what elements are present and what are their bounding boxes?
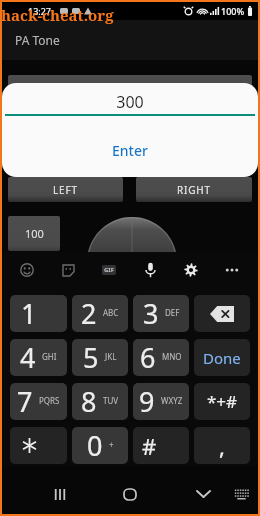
button[interactable]: 2 <box>72 295 128 332</box>
button[interactable]: , <box>194 427 250 464</box>
button[interactable]: Emoji <box>15 258 39 282</box>
staticText: 13:27 <box>28 5 52 17</box>
button[interactable]: 4 <box>10 339 67 376</box>
button[interactable]: 9 <box>133 383 189 420</box>
staticText: TONE <box>115 149 145 163</box>
staticText: 9 <box>139 383 155 420</box>
button[interactable]: Hide keyboard <box>181 472 225 516</box>
button[interactable]: Recents <box>37 472 81 516</box>
staticText: 5 <box>83 339 99 376</box>
staticText: PQRS <box>39 395 60 406</box>
staticText: Done <box>203 348 241 368</box>
button[interactable]: Voice input <box>138 258 162 282</box>
button[interactable]: 100 <box>8 216 60 251</box>
staticText: 100% <box>221 5 245 17</box>
button[interactable]: More options <box>220 258 244 282</box>
staticText: 300 <box>2 91 258 113</box>
button[interactable]: Enter <box>2 135 258 166</box>
staticText: 8 <box>81 383 97 420</box>
button[interactable]: 0 <box>72 427 128 464</box>
button[interactable]: SOUND OFF <box>8 109 252 134</box>
button[interactable]: 7 <box>10 383 67 420</box>
staticText: *+# <box>207 390 238 413</box>
button[interactable]: Settings <box>179 258 203 282</box>
staticText: LEFT <box>53 183 78 197</box>
staticText: MNO <box>162 351 182 362</box>
staticText: 3 <box>143 295 159 332</box>
button[interactable]: # <box>133 427 189 464</box>
button[interactable]: 8 <box>72 383 128 420</box>
staticText: GHI <box>42 351 57 362</box>
staticText: ABC <box>103 307 119 318</box>
staticText: WXYZ <box>161 395 183 406</box>
staticText: JKL <box>105 351 117 362</box>
button[interactable]: TONE <box>8 143 252 168</box>
button[interactable]: Home <box>108 472 152 516</box>
staticText: RIGHT <box>177 183 211 197</box>
staticText: # <box>142 431 157 461</box>
button[interactable]: Stickers <box>56 258 80 282</box>
button[interactable]: Change keyboard <box>219 472 260 516</box>
staticText: 0 <box>87 427 103 464</box>
staticText: , <box>219 431 225 461</box>
button[interactable]: GIF <box>97 258 121 282</box>
button[interactable]: *+# <box>194 383 250 420</box>
button[interactable]: SOUND ON <box>8 75 252 100</box>
button[interactable]: Asterisk <box>10 427 67 464</box>
button[interactable]: RIGHT <box>136 177 252 202</box>
button[interactable]: 6 <box>133 339 189 376</box>
button[interactable]: 5 <box>72 339 128 376</box>
button[interactable]: Done <box>194 339 250 376</box>
staticText: 2 <box>81 295 97 332</box>
staticText: + <box>109 439 114 450</box>
staticText: 100 <box>25 226 44 241</box>
staticText: PA Tone <box>15 32 60 48</box>
button[interactable]: 3 <box>133 295 189 332</box>
staticText: hack-cheat.org <box>1 5 114 25</box>
staticText: TUV <box>103 395 119 406</box>
staticText: 4 <box>20 339 36 376</box>
staticText: SOUND ON <box>100 81 160 95</box>
staticText: 6 <box>140 339 156 376</box>
button[interactable]: 1 <box>10 295 67 332</box>
staticText: 7 <box>17 383 33 420</box>
button[interactable]: Backspace <box>194 295 250 332</box>
button[interactable]: LEFT <box>8 177 123 202</box>
staticText: Enter <box>112 141 148 160</box>
staticText: SOUND OFF <box>98 115 162 129</box>
staticText: GIF <box>104 266 114 274</box>
staticText: 1 <box>21 295 37 332</box>
staticText: DEF <box>165 307 180 318</box>
